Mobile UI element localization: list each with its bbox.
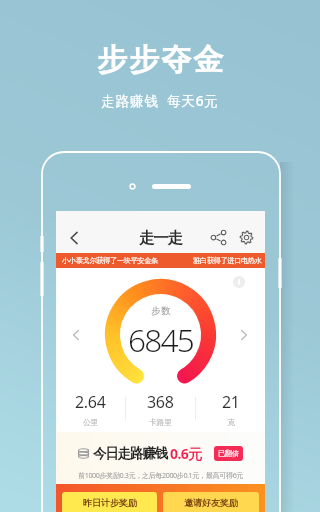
staticText: 雅白获得了进口电热水 xyxy=(193,256,262,265)
button[interactable]: 368 xyxy=(126,385,195,432)
button[interactable]: Previous day xyxy=(65,324,87,346)
button[interactable]: Share xyxy=(207,226,229,248)
staticText: 步数 xyxy=(151,305,171,317)
button[interactable]: Back xyxy=(61,225,87,251)
staticText: 卡路里 xyxy=(149,417,172,427)
staticText: 克 xyxy=(227,417,235,427)
staticText: 前1000步奖励0.3元，之后每2000步0.1元，最高可得6元 xyxy=(78,470,244,480)
button[interactable]: Info xyxy=(229,272,249,292)
button[interactable]: Settings xyxy=(235,226,257,248)
staticText: 0.6元 xyxy=(170,444,202,463)
button[interactable]: 21 xyxy=(196,385,265,432)
staticText: 邀请好友奖励 xyxy=(184,497,238,508)
staticText: 昨日计步奖励 xyxy=(83,497,137,508)
staticText: 已翻倍 xyxy=(218,449,239,458)
button[interactable]: 小小泰戈尔获得了一块平安金条 xyxy=(56,253,265,268)
button[interactable]: 今日走路赚钱 xyxy=(78,444,243,463)
staticText: 今日走路赚钱 xyxy=(93,445,167,462)
staticText: 走路赚钱 每天6元 xyxy=(101,91,219,110)
button[interactable]: 昨日计步奖励 xyxy=(62,492,157,512)
staticText: 368 xyxy=(147,391,174,413)
staticText: 2.64 xyxy=(75,391,106,413)
staticText: 21 xyxy=(222,391,240,413)
staticText: 6845 xyxy=(128,318,194,361)
staticText: 小小泰戈尔获得了一块平安金条 xyxy=(62,256,158,265)
staticText: 公里 xyxy=(83,417,99,427)
staticText: 步步夺金 xyxy=(96,41,224,79)
button[interactable]: 2.64 xyxy=(56,385,125,432)
button[interactable]: Next day xyxy=(233,324,255,346)
staticText: 走一走 xyxy=(139,228,182,248)
button[interactable]: 邀请好友奖励 xyxy=(163,492,259,512)
